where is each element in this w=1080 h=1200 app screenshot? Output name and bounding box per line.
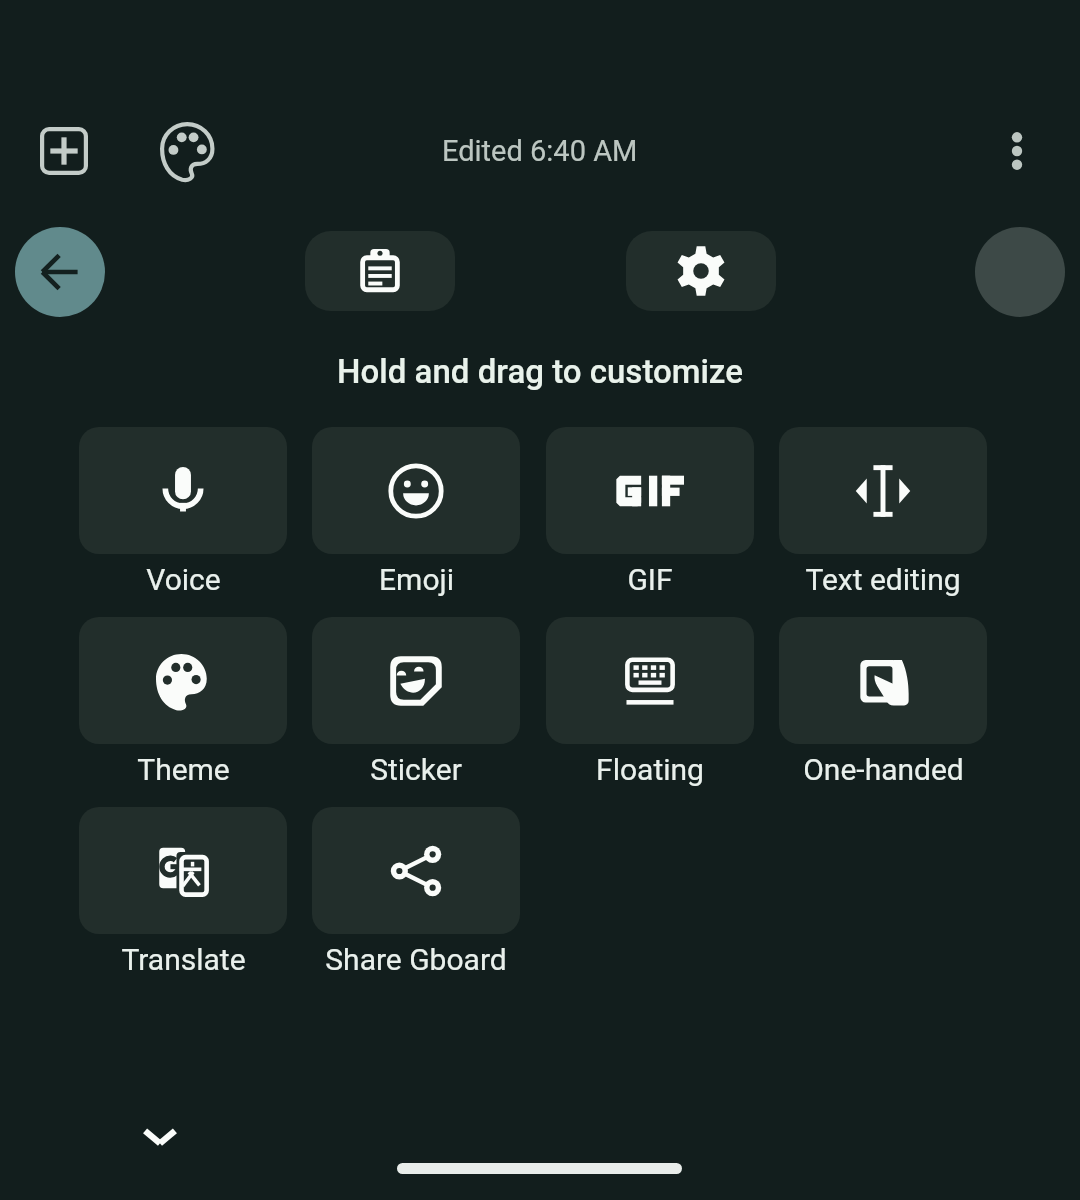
staticText: Translate [121, 942, 246, 977]
button[interactable]: Sticker [312, 617, 520, 787]
button[interactable]: Add [24, 111, 104, 191]
staticText: GIF [627, 562, 673, 597]
button[interactable]: More options [977, 111, 1057, 191]
button[interactable]: GIF [546, 427, 754, 597]
staticText: One-handed [803, 752, 964, 787]
staticText: Sticker [370, 752, 462, 787]
button[interactable]: Clipboard [305, 231, 455, 311]
staticText: Floating [596, 752, 704, 787]
staticText: Text editing [805, 562, 961, 597]
staticText: Voice [146, 562, 221, 597]
button[interactable]: Theme [79, 617, 287, 787]
button[interactable]: Themes [149, 111, 229, 191]
staticText: Hold and drag to customize [337, 352, 743, 391]
button[interactable]: Menu [975, 227, 1065, 317]
button[interactable]: Settings [626, 231, 776, 311]
button[interactable]: Voice [79, 427, 287, 597]
staticText: Edited 6:40 AM [442, 134, 638, 168]
button[interactable]: Floating [546, 617, 754, 787]
button[interactable]: Collapse keyboard [122, 1100, 198, 1176]
button[interactable]: Back [15, 227, 105, 317]
button[interactable]: One-handed [779, 617, 987, 787]
button[interactable]: Share Gboard [312, 807, 520, 977]
staticText: Emoji [379, 562, 454, 597]
button[interactable]: Text editing [779, 427, 987, 597]
button[interactable]: Emoji [312, 427, 520, 597]
button[interactable]: Translate [79, 807, 287, 977]
staticText: Share Gboard [325, 942, 507, 977]
staticText: Theme [137, 752, 230, 787]
